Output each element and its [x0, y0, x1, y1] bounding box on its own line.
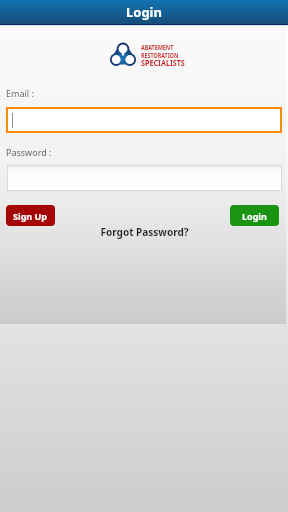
staticText: Login — [242, 210, 267, 222]
staticText: Password : — [6, 146, 52, 158]
button[interactable]: Email input — [6, 107, 282, 133]
button[interactable]: Login — [230, 205, 279, 226]
staticText: Email : — [6, 87, 34, 99]
staticText: Login — [126, 3, 162, 21]
button[interactable]: Password input — [7, 165, 282, 191]
staticText: Sign Up — [13, 210, 48, 222]
button[interactable]: Sign Up — [6, 205, 55, 226]
staticText: SPECIALISTS — [141, 57, 185, 68]
button[interactable]: Forgot Password? — [100, 225, 189, 239]
staticText: ABATEMENT — [141, 43, 174, 52]
staticText: RESTORATION — [141, 51, 179, 60]
